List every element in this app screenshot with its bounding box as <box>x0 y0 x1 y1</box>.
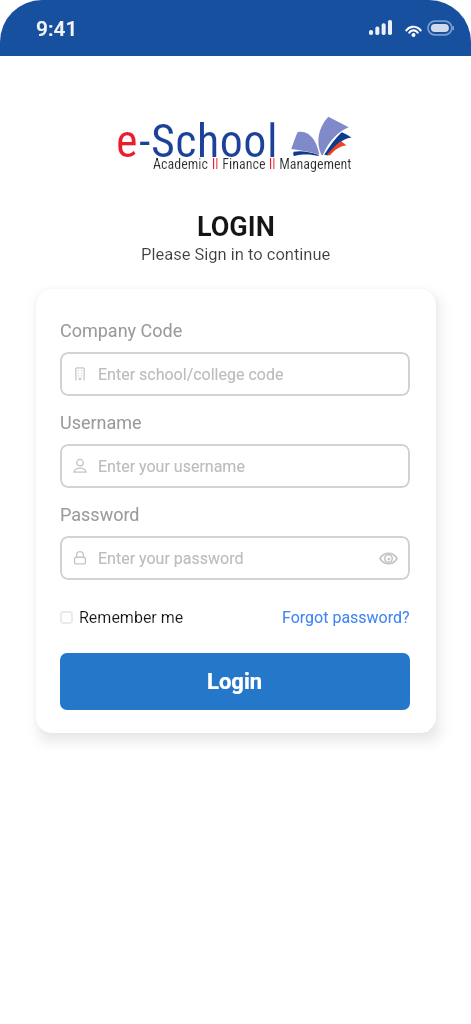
staticText: Enter your username <box>98 457 245 476</box>
staticText: Academic <box>153 156 212 172</box>
button[interactable]: Forgot password? <box>282 608 410 627</box>
staticText: Please Sign in to continue <box>141 245 331 264</box>
staticText: Username <box>60 412 142 433</box>
button[interactable]: Login <box>60 653 410 710</box>
staticText: ll <box>269 156 276 172</box>
staticText: e <box>116 114 139 168</box>
staticText: Enter school/college code <box>98 365 284 384</box>
staticText: ll <box>212 156 219 172</box>
staticText: 9:41 <box>36 17 78 42</box>
staticText: Remember me <box>79 608 184 627</box>
staticText: Password <box>60 504 140 525</box>
staticText: LOGIN <box>197 211 275 243</box>
button[interactable]: Enter your username <box>60 444 410 488</box>
staticText: Company Code <box>60 320 183 341</box>
staticText: Enter your password <box>98 549 244 568</box>
staticText: Login <box>207 669 263 695</box>
button[interactable]: Enter school/college code <box>60 352 410 396</box>
other: Show password <box>379 549 398 568</box>
staticText: -School <box>139 114 278 168</box>
button[interactable]: Remember me <box>60 608 184 627</box>
button[interactable]: Enter your password <box>60 536 410 580</box>
staticText: Management <box>276 156 352 172</box>
staticText: Finance <box>219 156 269 172</box>
